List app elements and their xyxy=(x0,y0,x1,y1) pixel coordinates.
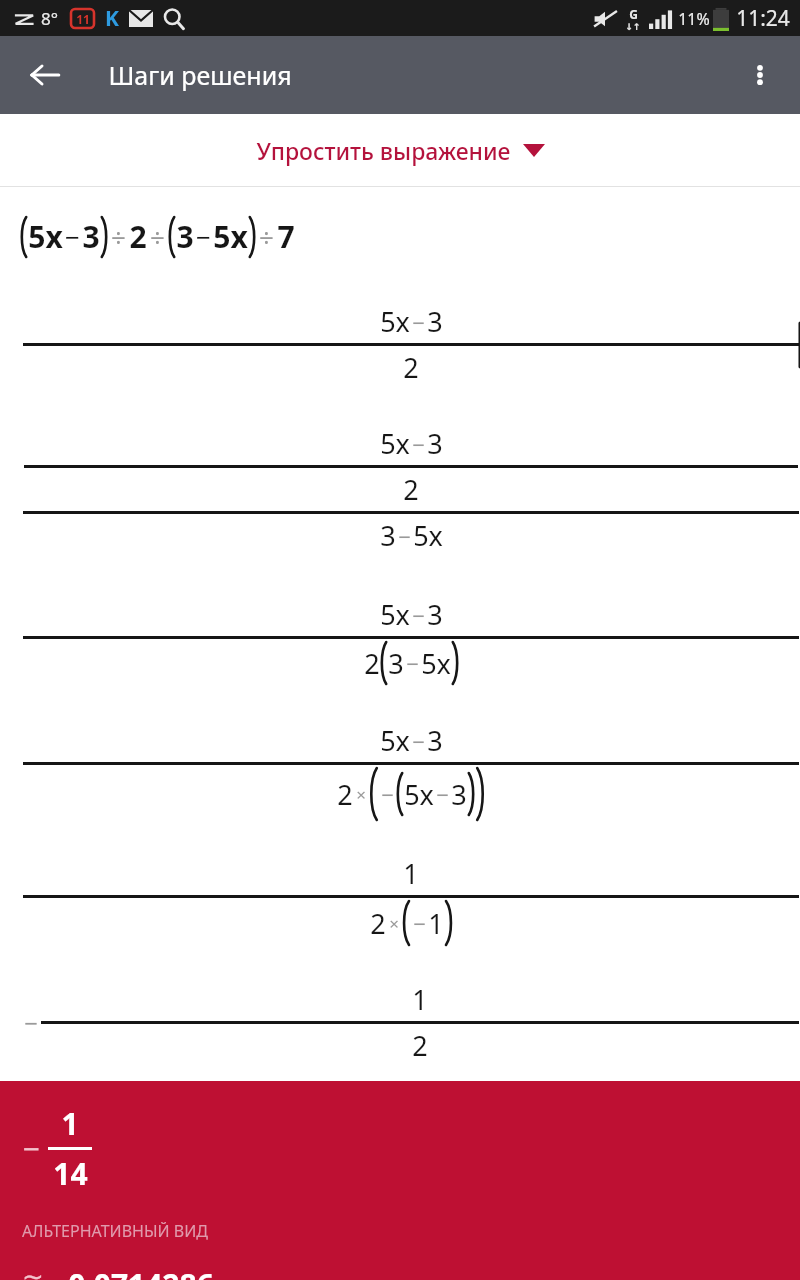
staticText: Шаги решения xyxy=(108,58,292,92)
staticText: − xyxy=(412,429,425,459)
button[interactable]: 5x xyxy=(0,187,800,285)
staticText: 2 xyxy=(364,645,380,682)
button[interactable]: Назад xyxy=(18,48,72,102)
staticText: ÷ xyxy=(111,219,126,254)
staticText: 5x xyxy=(380,722,410,759)
staticText: 5x xyxy=(213,216,248,257)
staticText: ÷ xyxy=(150,219,165,254)
staticText: ≈ xyxy=(22,1264,44,1280)
button[interactable]: 5x xyxy=(0,705,800,837)
staticText: 14 xyxy=(53,1153,88,1194)
staticText: 2 xyxy=(129,216,147,257)
staticText: − xyxy=(412,600,425,630)
staticText: 5x xyxy=(28,216,63,257)
staticText: 11:24 xyxy=(736,4,790,33)
staticText: − xyxy=(406,648,419,678)
staticText: 1 xyxy=(412,981,428,1018)
staticText: 3 xyxy=(82,216,100,257)
button[interactable]: 1 xyxy=(0,837,800,963)
staticText: G xyxy=(629,6,638,22)
staticText: 3 xyxy=(427,722,443,759)
button[interactable]: Ещё xyxy=(732,47,788,103)
staticText: − xyxy=(412,307,425,337)
staticText: 5x xyxy=(413,517,443,554)
staticText: 3 xyxy=(380,517,396,554)
staticText: − xyxy=(436,779,449,809)
staticText: 1 xyxy=(428,905,444,942)
staticText: ÷ xyxy=(259,219,274,254)
staticText: 5x xyxy=(380,596,410,633)
staticText: 1 xyxy=(61,1103,79,1144)
staticText: 2 xyxy=(370,905,386,942)
staticText: 11% xyxy=(678,8,710,30)
staticText: 2 xyxy=(412,1027,428,1064)
staticText: − xyxy=(22,1128,40,1169)
staticText: − xyxy=(398,521,411,551)
staticText: 5x xyxy=(421,645,451,682)
staticText: 2 xyxy=(337,776,353,813)
staticText: 3 xyxy=(451,776,467,813)
staticText: K xyxy=(105,4,119,33)
staticText: 3 xyxy=(427,425,443,462)
button[interactable]: − xyxy=(0,1081,800,1280)
staticText: АЛЬТЕРНАТИВНЫЙ ВИД xyxy=(22,1220,208,1242)
staticText: − xyxy=(196,219,211,254)
staticText: 5x xyxy=(380,425,410,462)
staticText: 5x xyxy=(380,303,410,340)
staticText: 8° xyxy=(41,7,58,30)
staticText: − xyxy=(413,908,426,938)
button[interactable]: Упростить выражение xyxy=(0,114,800,186)
staticText: − xyxy=(65,219,80,254)
button[interactable]: 5x xyxy=(0,575,800,705)
staticText: − xyxy=(412,726,425,756)
button[interactable]: 5x xyxy=(0,403,800,575)
button[interactable]: − xyxy=(0,963,800,1081)
staticText: Упростить выражение xyxy=(256,135,511,166)
staticText: × xyxy=(389,912,399,935)
staticText: 11 xyxy=(76,11,90,27)
staticText: 3 xyxy=(427,303,443,340)
staticText: − xyxy=(24,1006,38,1039)
staticText: 2 xyxy=(403,471,419,508)
staticText: × xyxy=(356,783,366,806)
button[interactable]: 5x xyxy=(0,285,800,403)
staticText: 3 xyxy=(427,596,443,633)
staticText: 5x xyxy=(404,776,434,813)
staticText: 2 xyxy=(403,349,419,386)
staticText: 1 xyxy=(403,855,419,892)
staticText: 3 xyxy=(176,216,194,257)
staticText: ↓↑ xyxy=(625,22,641,32)
staticText: 7 xyxy=(277,216,295,257)
staticText: − xyxy=(381,779,394,809)
staticText: 3 xyxy=(388,645,404,682)
staticText: 0.0714286 xyxy=(68,1264,214,1280)
